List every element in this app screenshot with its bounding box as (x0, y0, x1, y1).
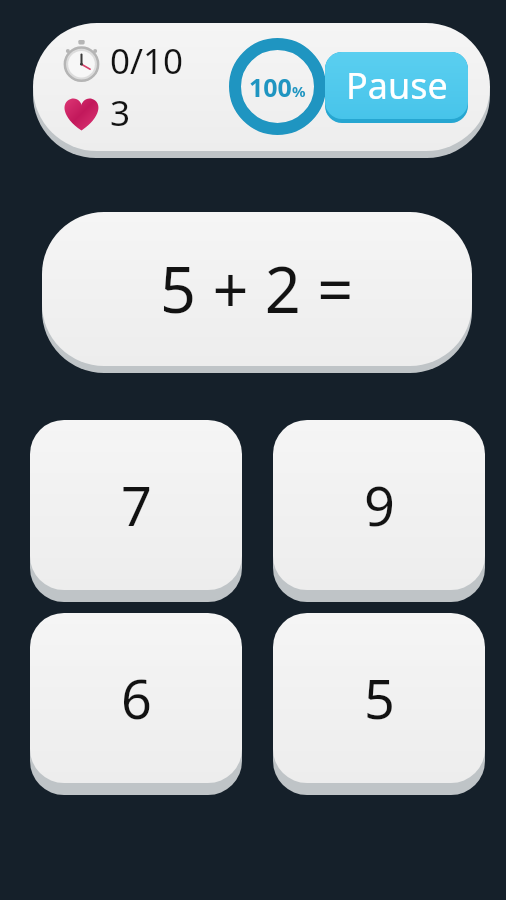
staticText: 6 (121, 661, 152, 735)
staticText: 0/10 (110, 37, 184, 85)
staticText: 5 (364, 661, 395, 735)
staticText: % (292, 81, 306, 101)
staticText: 5 + 2 = (160, 246, 354, 332)
button[interactable]: Pause (325, 52, 468, 123)
staticText: Pause (346, 61, 448, 110)
button[interactable]: 9 (273, 420, 485, 602)
staticText: 9 (364, 468, 395, 542)
button[interactable]: 6 (30, 613, 242, 795)
button[interactable]: 7 (30, 420, 242, 602)
staticText: 7 (121, 468, 152, 542)
staticText: 100 (249, 70, 292, 104)
button[interactable]: 5 (273, 613, 485, 795)
staticText: 3 (110, 89, 131, 137)
